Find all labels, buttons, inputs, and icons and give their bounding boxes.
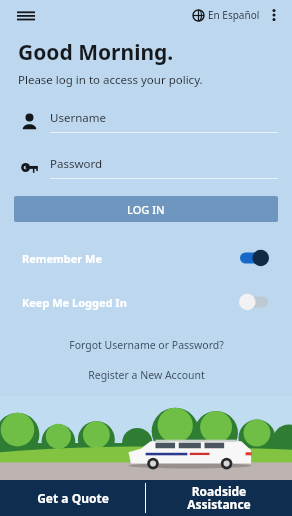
button[interactable]: Forgot Username or Password? bbox=[0, 338, 292, 352]
staticText: Roadside Assistance bbox=[187, 483, 251, 513]
staticText: Get a Quote bbox=[37, 490, 109, 506]
staticText: En Español bbox=[208, 8, 260, 22]
button[interactable]: En Español bbox=[193, 8, 260, 22]
button[interactable]: LOG IN bbox=[14, 196, 278, 222]
button[interactable]: More options bbox=[262, 3, 286, 27]
button[interactable]: Remember Me bbox=[22, 246, 270, 270]
staticText: Username bbox=[50, 110, 106, 126]
staticText: Password bbox=[50, 156, 103, 172]
staticText: Forgot Username or Password? bbox=[69, 338, 224, 352]
staticText: Please log in to access your policy. bbox=[18, 72, 203, 88]
button[interactable]: Menu bbox=[12, 1, 40, 29]
staticText: Register a New Account bbox=[88, 368, 205, 382]
button[interactable]: Register a New Account bbox=[0, 368, 292, 382]
button[interactable]: Username bbox=[14, 106, 278, 136]
button[interactable]: Password bbox=[14, 152, 278, 182]
staticText: Keep Me Logged In bbox=[22, 295, 127, 310]
button[interactable]: Keep Me Logged In bbox=[22, 290, 270, 314]
staticText: LOG IN bbox=[127, 202, 165, 217]
button[interactable]: Get a Quote bbox=[0, 480, 145, 516]
staticText: Remember Me bbox=[22, 251, 103, 266]
button[interactable]: Roadside Assistance bbox=[146, 480, 292, 516]
staticText: Good Morning. bbox=[18, 38, 174, 67]
